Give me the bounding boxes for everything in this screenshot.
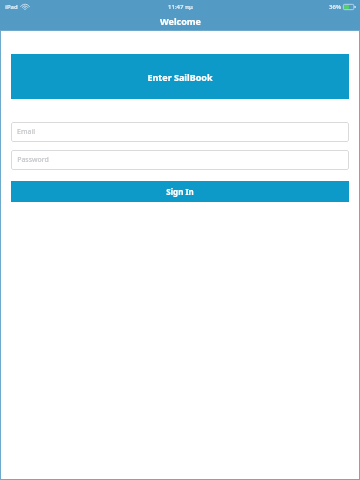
other: Battery 36 percent (343, 4, 356, 10)
staticText: iPad (5, 3, 18, 11)
staticText: Password (17, 155, 49, 165)
button[interactable]: Sign In (11, 181, 349, 202)
staticText: 36% (329, 3, 341, 11)
staticText: Welcome (160, 15, 201, 27)
staticText: Enter SailBook (147, 71, 213, 83)
button[interactable]: Password (11, 150, 349, 170)
other: Wi-Fi signal (21, 4, 29, 10)
staticText: 11:47 πμ (168, 3, 193, 11)
button[interactable]: Email (11, 122, 349, 142)
staticText: Email (17, 127, 35, 137)
button[interactable]: Enter SailBook (11, 54, 349, 99)
staticText: Sign In (166, 186, 194, 197)
